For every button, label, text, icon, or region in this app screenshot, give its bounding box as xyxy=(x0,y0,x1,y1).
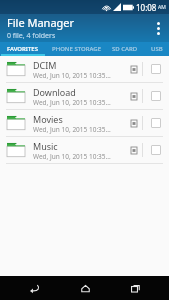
staticText: File Manager xyxy=(7,15,75,30)
staticText: DCIM xyxy=(33,59,57,71)
button[interactable]: Back xyxy=(17,276,51,300)
button[interactable]: Select DCIM xyxy=(143,56,169,82)
button[interactable]: Select Download xyxy=(143,83,169,109)
button[interactable]: Storage info xyxy=(126,56,142,82)
button[interactable]: PHONE STORAGE xyxy=(46,42,106,56)
staticText: PHONE STORAGE xyxy=(52,45,101,53)
button[interactable]: Recents xyxy=(118,276,152,300)
staticText: Wed, Jun 10, 2015 10:35... xyxy=(33,98,111,107)
button[interactable]: Storage info xyxy=(126,110,142,136)
staticText: Wed, Jun 10, 2015 10:35... xyxy=(33,152,111,161)
button[interactable]: Storage info xyxy=(126,83,142,109)
button[interactable]: Download xyxy=(0,83,169,110)
staticText: Music xyxy=(33,140,58,152)
button[interactable]: Select Movies xyxy=(143,110,169,136)
staticText: Wed, Jun 10, 2015 10:35... xyxy=(33,125,111,134)
button[interactable]: Movies xyxy=(0,110,169,137)
staticText: 0 file, 4 folders xyxy=(7,31,56,41)
button[interactable]: Select Music xyxy=(143,137,169,163)
button[interactable]: Music xyxy=(0,137,169,164)
staticText: AM xyxy=(158,4,166,11)
staticText: Wed, Jun 10, 2015 10:35... xyxy=(33,71,111,80)
staticText: Movies xyxy=(33,113,63,125)
staticText: FAVORITES xyxy=(7,45,39,53)
staticText: USB xyxy=(151,45,163,53)
button[interactable]: FAVORITES xyxy=(0,42,46,56)
button[interactable]: USB xyxy=(144,42,169,56)
button[interactable]: SD CARD xyxy=(106,42,144,56)
button[interactable]: More options xyxy=(147,14,169,42)
staticText: SD CARD xyxy=(112,45,138,53)
staticText: Download xyxy=(33,86,76,98)
button[interactable]: Storage info xyxy=(126,137,142,163)
button[interactable]: Home xyxy=(68,276,102,300)
button[interactable]: DCIM xyxy=(0,56,169,83)
staticText: 10:08 xyxy=(136,2,157,13)
